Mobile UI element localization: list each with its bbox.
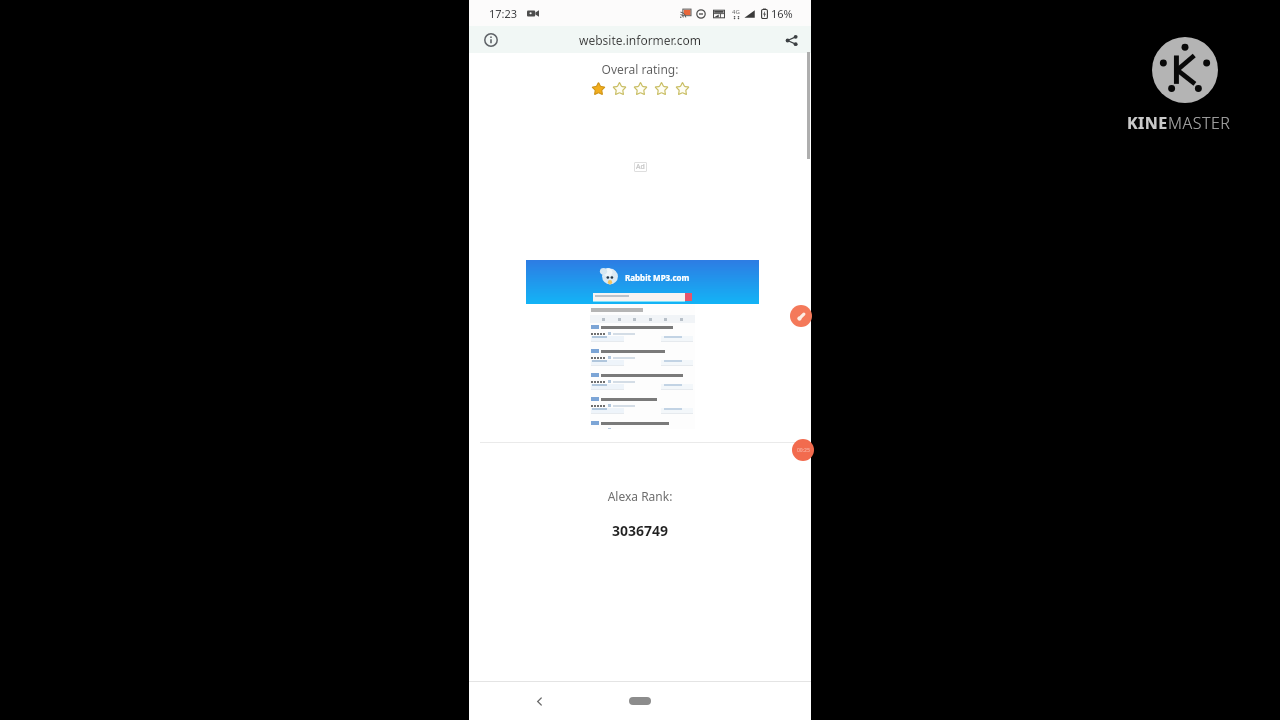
staticText: Rabbit MP3.com bbox=[625, 272, 690, 283]
button[interactable]: Share bbox=[779, 28, 803, 52]
staticText: Alexa Rank: bbox=[469, 488, 811, 504]
button[interactable]: Ad bbox=[636, 162, 645, 172]
staticText: MASTER bbox=[1168, 112, 1231, 134]
button[interactable]: Rate 5 stars bbox=[674, 80, 691, 97]
staticText: Ad bbox=[636, 162, 645, 172]
button[interactable]: Page info bbox=[479, 28, 503, 52]
staticText: 00:25 bbox=[797, 447, 810, 454]
staticText: website.informer.com bbox=[579, 32, 702, 48]
button[interactable]: Rate 4 stars bbox=[653, 80, 670, 97]
staticText: KINE bbox=[1127, 112, 1168, 134]
staticText: 3036749 bbox=[469, 521, 811, 540]
staticText: 17:23 bbox=[489, 6, 518, 21]
button[interactable]: Rate 2 stars bbox=[611, 80, 628, 97]
button[interactable]: Recording timer bbox=[792, 439, 814, 461]
button[interactable]: Website screenshot preview bbox=[471, 260, 813, 429]
staticText: 16% bbox=[771, 6, 793, 21]
button[interactable]: Back bbox=[526, 688, 552, 714]
button[interactable]: Rate 1 stars bbox=[590, 80, 607, 97]
button[interactable]: Home bbox=[618, 690, 662, 712]
staticText: 4G bbox=[732, 8, 740, 16]
button[interactable]: Rate 3 stars bbox=[632, 80, 649, 97]
button[interactable]: Draw bbox=[790, 305, 812, 327]
staticText: Overal rating: bbox=[469, 61, 811, 77]
